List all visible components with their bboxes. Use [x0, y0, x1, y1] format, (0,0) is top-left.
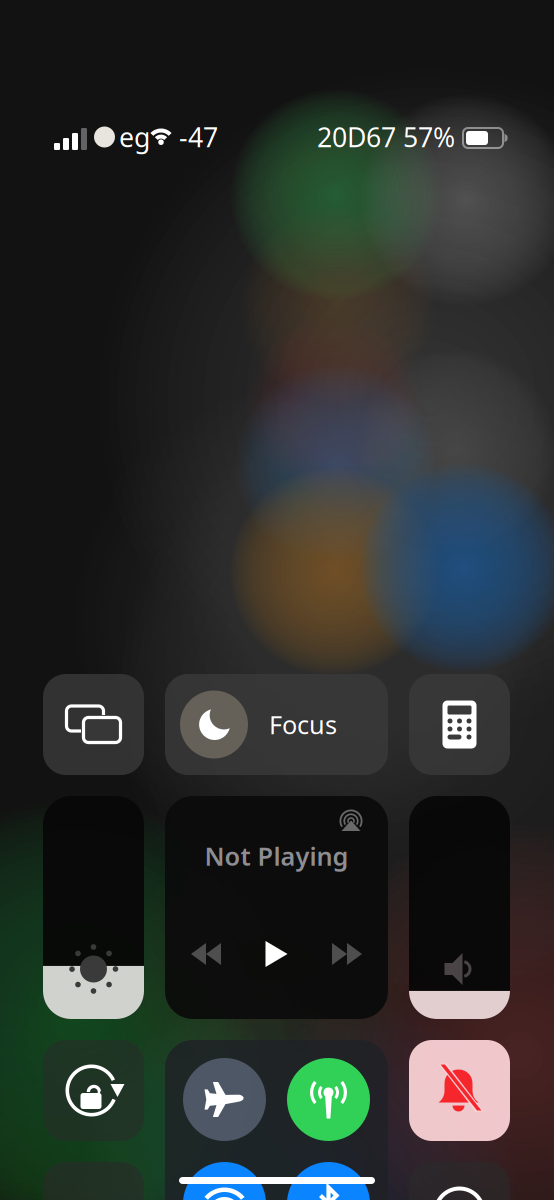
button[interactable]: AirPlay: [331, 801, 371, 841]
button[interactable]: Flashlight: [409, 1162, 510, 1200]
button[interactable]: Focus: [165, 674, 388, 775]
staticText: eg: [119, 119, 150, 155]
button[interactable]: Play: [247, 931, 305, 977]
button[interactable]: Calculator: [409, 674, 510, 775]
button[interactable]: Brightness: [43, 796, 144, 1019]
staticText: Focus: [269, 708, 337, 741]
button[interactable]: Rewind: [177, 931, 235, 977]
staticText: 20D67 57%: [317, 119, 455, 155]
button[interactable]: Rotation Lock: [43, 1040, 144, 1141]
button[interactable]: Screen Mirroring: [43, 674, 144, 775]
button[interactable]: Silent Mode: [409, 1040, 510, 1141]
button[interactable]: Volume: [409, 796, 510, 1019]
staticText: Not Playing: [204, 839, 348, 873]
button[interactable]: Not Playing: [165, 796, 388, 1019]
button[interactable]: [165, 1040, 388, 1200]
button[interactable]: Low Power Mode: [43, 1162, 144, 1200]
button[interactable]: Fast forward: [318, 931, 376, 977]
staticText: -47: [179, 119, 218, 155]
